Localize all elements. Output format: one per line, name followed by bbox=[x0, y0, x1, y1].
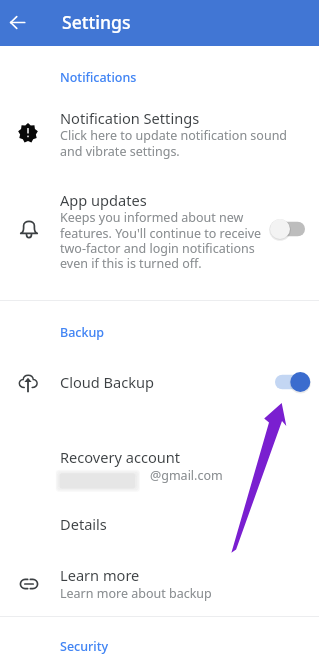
staticText: App updates bbox=[60, 190, 147, 210]
staticText: Recovery account bbox=[60, 447, 181, 467]
button[interactable] bbox=[0, 560, 319, 608]
button[interactable] bbox=[0, 360, 319, 404]
staticText: Security bbox=[60, 638, 109, 655]
staticText: Notifications bbox=[60, 69, 137, 86]
button[interactable] bbox=[0, 508, 319, 544]
button[interactable]: Turn off bbox=[268, 368, 312, 396]
staticText: Settings bbox=[62, 10, 131, 34]
button[interactable] bbox=[0, 178, 319, 278]
staticText: Keeps you informed about new features. Y… bbox=[60, 209, 262, 271]
staticText: Click here to update notification sound … bbox=[60, 127, 310, 159]
staticText: @gmail.com bbox=[150, 467, 223, 484]
staticText: Cloud Backup bbox=[60, 372, 155, 392]
button[interactable]: Back bbox=[1, 6, 33, 38]
staticText: Learn more about backup bbox=[60, 585, 212, 602]
button[interactable] bbox=[0, 96, 319, 164]
staticText: Details bbox=[60, 514, 107, 534]
button[interactable] bbox=[0, 440, 319, 496]
staticText: Notification Settings bbox=[60, 108, 200, 128]
staticText: Backup bbox=[60, 324, 105, 341]
staticText: Learn more bbox=[60, 565, 140, 585]
button[interactable]: Turn on bbox=[268, 215, 312, 243]
